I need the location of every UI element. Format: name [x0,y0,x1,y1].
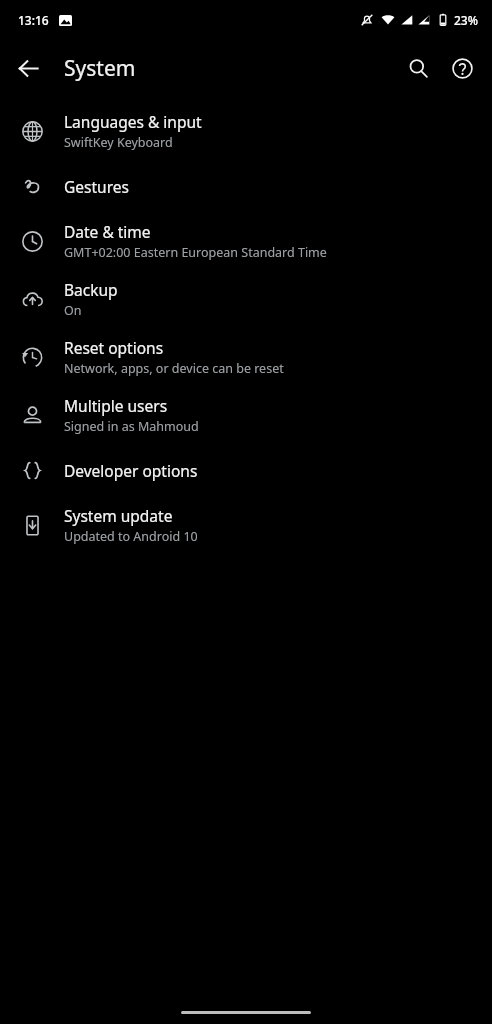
staticText: 13:16 [18,12,49,28]
staticText: Date & time [64,221,151,242]
button[interactable]: Back [6,46,50,90]
staticText: 23% [454,12,478,28]
button[interactable]: Backup [0,270,492,328]
button[interactable]: Date & time [0,212,492,270]
button[interactable]: Languages & input [0,102,492,160]
staticText: Gestures [64,176,129,197]
staticText: Languages & input [64,111,202,132]
button[interactable]: System update [0,496,492,554]
button[interactable]: Reset options [0,328,492,386]
staticText: Signed in as Mahmoud [64,418,199,435]
staticText: SwiftKey Keyboard [64,134,173,151]
staticText: Multiple users [64,395,168,416]
staticText: System [64,54,136,83]
staticText: Updated to Android 10 [64,528,198,545]
staticText: On [64,302,82,319]
button[interactable]: Search [396,46,440,90]
staticText: GMT+02:00 Eastern European Standard Time [64,244,327,261]
staticText: Backup [64,279,118,300]
button[interactable]: Help [440,46,484,90]
staticText: Reset options [64,337,164,358]
button[interactable]: Developer options [0,444,492,496]
button[interactable]: Gestures [0,160,492,212]
button[interactable]: Multiple users [0,386,492,444]
staticText: System update [64,505,173,526]
staticText: Network, apps, or device can be reset [64,360,284,377]
staticText: Developer options [64,460,198,481]
